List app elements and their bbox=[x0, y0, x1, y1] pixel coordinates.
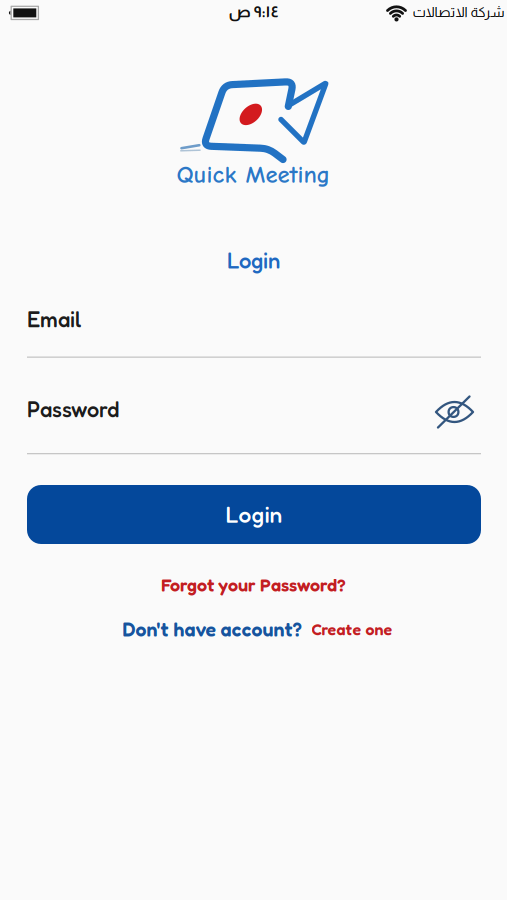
button[interactable] bbox=[430, 390, 480, 434]
staticText: Password bbox=[27, 396, 119, 422]
button[interactable]: Email bbox=[27, 300, 481, 358]
staticText: Login bbox=[227, 247, 280, 274]
staticText: Create one bbox=[311, 620, 392, 639]
staticText: شركة الاتصالات bbox=[412, 4, 504, 20]
button[interactable]: Login bbox=[27, 485, 481, 544]
staticText: Don't have account? bbox=[122, 617, 301, 641]
button[interactable]: Password bbox=[27, 390, 481, 455]
staticText: Quick Meeting bbox=[176, 160, 330, 189]
button[interactable]: Create one bbox=[311, 620, 392, 639]
staticText: Login bbox=[225, 501, 282, 528]
staticText: Email bbox=[27, 306, 81, 332]
staticText: ٩:١٤ ص bbox=[228, 3, 278, 21]
staticText: Forgot your Password? bbox=[161, 574, 346, 596]
button[interactable]: Forgot your Password? bbox=[161, 574, 346, 596]
